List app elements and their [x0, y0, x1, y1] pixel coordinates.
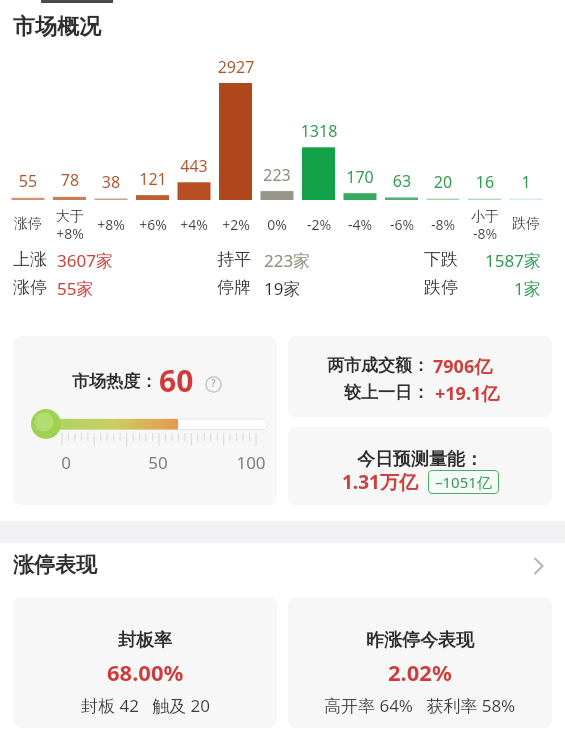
- staticText: 两市成交额：: [327, 355, 429, 376]
- staticText: 持平: [217, 249, 251, 270]
- staticText: 0%: [247, 215, 307, 234]
- button[interactable]: [0, 548, 565, 578]
- staticText: +6%: [123, 215, 183, 234]
- staticText: 2927: [206, 56, 266, 78]
- staticText: 市场热度：: [72, 371, 157, 392]
- staticText: 跌停: [424, 277, 458, 298]
- button[interactable]: 昨涨停今表现: [288, 597, 552, 728]
- staticText: 1: [496, 171, 556, 193]
- button[interactable]: 封板率: [13, 597, 277, 728]
- staticText: 1587家: [485, 249, 541, 272]
- staticText: -6%: [372, 215, 432, 234]
- staticText: 170: [330, 166, 390, 188]
- staticText: 0: [46, 451, 86, 474]
- staticText: +4%: [164, 215, 224, 234]
- staticText: 7906亿: [433, 354, 493, 379]
- staticText: 2.02%: [388, 657, 452, 687]
- staticText: 50: [138, 451, 178, 474]
- staticText: 20: [413, 171, 473, 193]
- staticText: +8%: [81, 215, 141, 234]
- staticText: 较上一日：: [344, 382, 429, 403]
- staticText: ?: [210, 376, 217, 390]
- staticText: 68.00%: [107, 657, 184, 687]
- button[interactable]: 两市成交额：: [288, 336, 552, 417]
- staticText: 60: [159, 360, 194, 401]
- staticText: 443: [164, 155, 224, 177]
- staticText: 涨停: [0, 215, 58, 233]
- staticText: 1318: [289, 120, 349, 142]
- staticText: 停牌: [217, 277, 251, 298]
- staticText: 55家: [57, 277, 94, 300]
- button[interactable]: 今日预测量能：: [288, 427, 552, 505]
- staticText: 19家: [264, 277, 301, 300]
- staticText: 223家: [264, 249, 311, 272]
- staticText: 昨涨停今表现: [366, 629, 474, 652]
- staticText: 63: [372, 170, 432, 192]
- staticText: -2%: [289, 215, 349, 234]
- staticText: -4%: [330, 215, 390, 234]
- staticText: -8%: [413, 215, 473, 234]
- staticText: 跌停: [496, 215, 556, 233]
- staticText: 市场概况: [13, 13, 101, 41]
- staticText: 38: [81, 171, 141, 193]
- staticText: 封板 42 触及 20: [81, 694, 210, 717]
- staticText: 大于 +8%: [40, 208, 100, 243]
- button[interactable]: 市场热度：: [13, 336, 277, 505]
- staticText: 上涨: [13, 249, 47, 270]
- staticText: 121: [123, 168, 183, 190]
- staticText: 78: [40, 169, 100, 191]
- staticText: 55: [0, 170, 58, 192]
- staticText: 小于 -8%: [455, 208, 515, 243]
- staticText: 封板率: [118, 629, 172, 652]
- staticText: 223: [247, 164, 307, 186]
- staticText: –1051亿: [435, 472, 492, 492]
- staticText: +19.1亿: [435, 381, 500, 406]
- staticText: 涨停: [13, 277, 47, 298]
- staticText: 3607家: [57, 249, 113, 272]
- staticText: 100: [231, 451, 271, 474]
- staticText: 高开率 64% 获利率 58%: [324, 694, 516, 717]
- staticText: 今日预测量能：: [357, 448, 483, 471]
- staticText: 1.31万亿: [342, 469, 418, 495]
- staticText: 1家: [514, 277, 541, 300]
- staticText: +2%: [206, 215, 266, 234]
- staticText: 16: [455, 171, 515, 193]
- staticText: 涨停表现: [13, 552, 97, 578]
- staticText: 下跌: [424, 249, 458, 270]
